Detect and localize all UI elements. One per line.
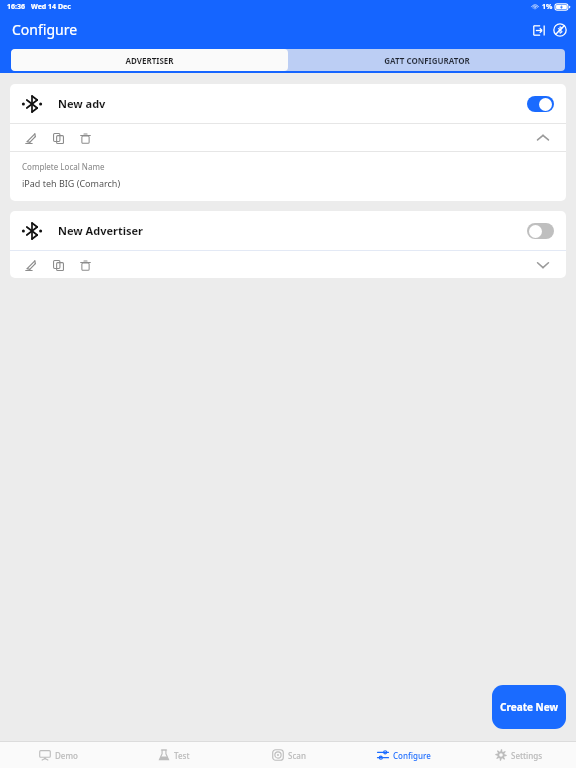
staticText: Configure [12,20,78,39]
staticText: Complete Local Name [22,161,105,172]
button[interactable]: New Advertiser [10,211,566,250]
staticText: 16:36 [7,2,25,12]
button[interactable]: Settings [461,742,576,768]
button[interactable]: Configure [346,742,461,768]
button[interactable]: Exit [530,21,548,39]
button[interactable]: ADVERTISER [11,49,288,71]
staticText: Settings [511,750,543,761]
staticText: Create New [500,700,559,714]
button[interactable]: Copy [49,129,67,147]
staticText: Scan [288,750,306,761]
staticText: New adv [58,96,106,111]
button[interactable]: Expand [532,254,554,276]
button[interactable]: Test [116,742,231,768]
button[interactable]: Copy [49,256,67,274]
staticText: GATT CONFIGURATOR [384,55,470,66]
button[interactable]: Collapse [532,127,554,149]
button[interactable]: Bluetooth off [551,21,569,39]
button[interactable]: Edit [22,129,40,147]
button[interactable]: New adv [10,84,566,123]
button[interactable]: Demo [0,742,116,768]
button[interactable]: Create New [492,685,566,729]
button[interactable]: Edit [22,256,40,274]
staticText: iPad teh BIG (Comarch) [22,177,121,189]
staticText: Wed 14 Dec [31,2,71,12]
button[interactable]: Delete [76,256,94,274]
staticText: ADVERTISER [125,55,174,66]
staticText: Test [174,750,190,761]
staticText: Configure [393,750,431,761]
staticText: Demo [55,750,78,761]
button[interactable]: Enabled [527,96,554,112]
button[interactable]: Scan [231,742,346,768]
button[interactable]: Delete [76,129,94,147]
staticText: 1% [542,2,553,12]
button[interactable]: GATT CONFIGURATOR [288,49,565,71]
button[interactable]: Disabled [527,223,554,239]
staticText: New Advertiser [58,223,143,238]
